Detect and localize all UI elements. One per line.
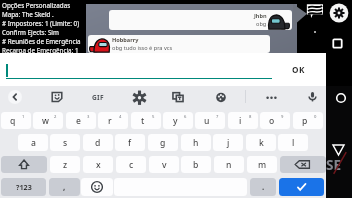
button[interactable]: OK — [280, 59, 317, 80]
staticText: q — [10, 115, 16, 127]
staticText: GIF — [92, 93, 104, 102]
staticText: h — [193, 137, 199, 149]
button[interactable]: Enter — [279, 178, 324, 196]
staticText: Mapa: The Skeld . — [2, 10, 54, 19]
staticText: f — [128, 137, 132, 149]
staticText: w — [42, 115, 49, 127]
staticText: z — [63, 159, 68, 171]
button[interactable]: h — [181, 134, 211, 151]
button[interactable]: Emoji — [81, 178, 113, 196]
button[interactable]: z — [50, 156, 80, 173]
button[interactable]: ?123 — [1, 178, 46, 196]
staticText: 2 — [54, 114, 57, 120]
staticText: 7 — [216, 114, 219, 120]
button[interactable]: Keyboard settings — [134, 92, 145, 103]
button[interactable]: a — [18, 134, 48, 151]
button[interactable]: c — [116, 156, 146, 173]
button[interactable]: q — [1, 112, 31, 129]
staticText: x — [96, 159, 101, 171]
button[interactable]: Shift — [1, 156, 47, 173]
staticText: j — [227, 137, 230, 149]
staticText: l — [292, 137, 295, 149]
button[interactable]: u — [195, 112, 225, 129]
staticText: r — [108, 115, 112, 127]
button[interactable]: Settings — [329, 3, 349, 23]
button[interactable]: y — [163, 112, 193, 129]
button[interactable]: t — [131, 112, 161, 129]
staticText: 9 — [281, 114, 284, 120]
button[interactable]: Hobbarry — [88, 35, 270, 53]
staticText: d — [95, 137, 101, 149]
button[interactable]: Voice input — [306, 90, 319, 103]
staticText: obg — [256, 20, 267, 28]
button[interactable]: o — [260, 112, 290, 129]
button[interactable]: p — [293, 112, 323, 129]
button[interactable]: g — [148, 134, 178, 151]
button[interactable]: Stop recording — [330, 36, 345, 51]
button[interactable]: Jhbn — [109, 10, 292, 30]
button[interactable]: v — [149, 156, 179, 173]
staticText: u — [204, 115, 210, 127]
button[interactable]: l — [278, 134, 308, 151]
staticText: OK — [292, 64, 305, 75]
button[interactable]: Stickers — [51, 91, 63, 103]
button[interactable]: x — [83, 156, 113, 173]
staticText: y — [173, 115, 178, 127]
button[interactable]: n — [214, 156, 244, 173]
staticText: a — [31, 137, 36, 149]
staticText: m — [258, 159, 267, 171]
button[interactable]: j — [213, 134, 243, 151]
button[interactable]: Backspace — [280, 156, 326, 173]
staticText: k — [259, 137, 264, 149]
staticText: v — [162, 159, 167, 171]
button[interactable]: b — [181, 156, 211, 173]
staticText: Hobbarry — [112, 36, 139, 44]
staticText: e — [76, 115, 81, 127]
staticText: 5 — [152, 114, 155, 120]
button[interactable]: Chat — [306, 3, 323, 18]
staticText: # Reuniões de Emergência — [2, 37, 81, 46]
staticText: 1 — [22, 114, 25, 120]
button[interactable]: More options — [265, 91, 278, 104]
button[interactable]: Theme — [215, 91, 227, 103]
staticText: n — [226, 159, 232, 171]
button[interactable]: i — [228, 112, 258, 129]
button[interactable]: w — [33, 112, 63, 129]
button[interactable]: Back — [333, 145, 344, 155]
button[interactable]: f — [115, 134, 145, 151]
button[interactable]: . — [250, 178, 276, 196]
staticText: , — [63, 181, 66, 192]
button[interactable]: r — [98, 112, 128, 129]
staticText: b — [193, 159, 199, 171]
staticText: g — [160, 137, 166, 149]
staticText: . — [262, 181, 265, 192]
staticText: 6 — [184, 114, 187, 120]
staticText: Opções Personalizadas — [2, 1, 71, 10]
button[interactable]: k — [246, 134, 276, 151]
button[interactable]: e — [66, 112, 96, 129]
staticText: Jhbn — [254, 12, 267, 20]
staticText: 0 — [314, 114, 317, 120]
staticText: Recarga de Emergência: 1 — [2, 46, 79, 55]
staticText: 4 — [119, 114, 122, 120]
staticText: p — [302, 115, 308, 127]
staticText: Confirm Ejects: Sim — [2, 28, 59, 37]
button[interactable]: , — [49, 178, 80, 196]
button[interactable]: GIF — [88, 90, 108, 105]
button[interactable]: Close toolbar — [8, 90, 22, 104]
button[interactable]: d — [83, 134, 113, 151]
staticText: 8 — [249, 114, 252, 120]
staticText: SE — [326, 156, 341, 174]
staticText: i — [239, 115, 242, 127]
button[interactable]: Home — [334, 91, 348, 105]
staticText: t — [141, 115, 145, 127]
staticText: s — [63, 137, 68, 149]
staticText: o — [269, 115, 275, 127]
button[interactable]: Translate — [172, 91, 184, 103]
staticText: obg tudo isso é pra vcs — [112, 44, 173, 52]
button[interactable]: s — [50, 134, 80, 151]
staticText: ?123 — [16, 182, 32, 192]
button[interactable]: m — [247, 156, 277, 173]
